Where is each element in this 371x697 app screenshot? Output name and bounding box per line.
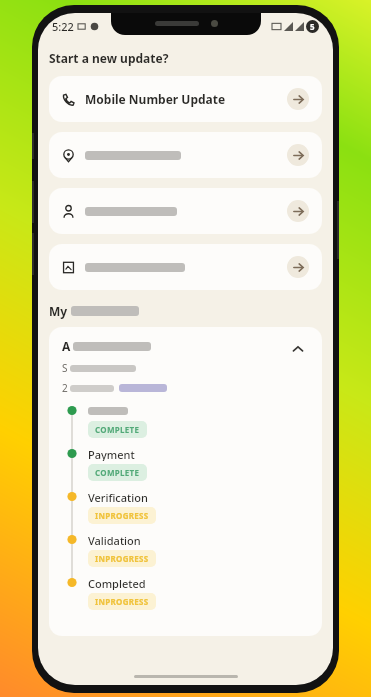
button[interactable]: Open bbox=[49, 132, 322, 178]
staticText: COMPLETE bbox=[95, 467, 140, 478]
staticText: Verification bbox=[88, 490, 148, 504]
staticText: INPROGRESS bbox=[95, 553, 149, 564]
other: Open bbox=[287, 200, 309, 222]
button[interactable]: Open bbox=[49, 188, 322, 234]
staticText: A bbox=[62, 338, 71, 354]
other: Collapse bbox=[287, 338, 309, 360]
staticText: Mobile Number Update bbox=[85, 91, 226, 107]
staticText: Payment bbox=[88, 447, 135, 461]
staticText: 5 bbox=[310, 21, 315, 32]
staticText: 5:22 bbox=[52, 19, 74, 34]
other: Open bbox=[287, 256, 309, 278]
button[interactable]: A bbox=[62, 338, 309, 395]
other: Open bbox=[287, 144, 309, 166]
staticText: INPROGRESS bbox=[95, 596, 149, 607]
button[interactable]: Mobile Number Update bbox=[49, 76, 322, 122]
staticText: COMPLETE bbox=[95, 424, 140, 435]
staticText: S bbox=[62, 361, 68, 375]
staticText: My bbox=[49, 303, 71, 319]
staticText: Validation bbox=[88, 533, 141, 547]
other: Open bbox=[287, 88, 309, 110]
staticText: Completed bbox=[88, 576, 146, 590]
staticText: Start a new update? bbox=[49, 50, 169, 66]
button[interactable]: Open bbox=[49, 244, 322, 290]
staticText: 2 bbox=[62, 381, 68, 395]
staticText: INPROGRESS bbox=[95, 510, 149, 521]
